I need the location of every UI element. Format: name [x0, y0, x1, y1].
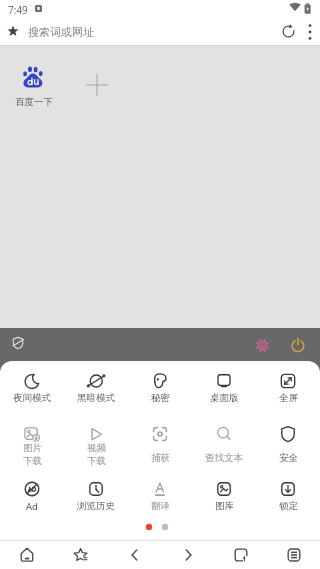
button[interactable] — [54, 541, 108, 569]
staticText: 锁定 — [279, 500, 298, 512]
button[interactable]: 图片 下载 — [0, 420, 64, 470]
button[interactable]: 安全 — [256, 420, 320, 470]
button[interactable] — [276, 19, 300, 43]
button[interactable]: 图库 — [192, 475, 256, 519]
button[interactable]: 锁定 — [256, 475, 320, 519]
staticText: 图片 下载 — [23, 442, 42, 467]
staticText: 秘密 — [151, 392, 170, 404]
button[interactable] — [0, 541, 54, 569]
button[interactable] — [301, 19, 319, 44]
button[interactable] — [66, 60, 128, 110]
button[interactable]: 捕获 — [128, 420, 192, 470]
staticText: 浏览历史 — [77, 500, 115, 512]
button[interactable] — [161, 541, 214, 569]
button[interactable]: 搜索词或网址 — [0, 18, 320, 45]
button[interactable] — [248, 331, 276, 359]
button[interactable]: 浏览历史 — [64, 475, 128, 519]
button[interactable]: 全屏 — [256, 367, 320, 411]
staticText: 视频 下载 — [87, 442, 106, 467]
staticText: 黑暗模式 — [77, 392, 115, 404]
button[interactable] — [284, 331, 312, 359]
staticText: 7:49 — [8, 3, 28, 17]
button[interactable] — [108, 541, 161, 569]
staticText: 桌面版 — [210, 392, 239, 404]
staticText: 百度一下 — [15, 96, 53, 108]
button[interactable] — [214, 541, 267, 569]
staticText: 图库 — [215, 500, 234, 512]
button[interactable]: 秘密 — [128, 367, 192, 411]
button[interactable]: 夜间模式 — [0, 367, 64, 411]
button[interactable]: 黑暗模式 — [64, 367, 128, 411]
button[interactable]: Ad — [0, 475, 64, 519]
staticText: 查找文本 — [205, 452, 243, 464]
staticText: 翻译 — [151, 500, 170, 512]
staticText: 捕获 — [151, 452, 170, 464]
staticText: 全屏 — [279, 392, 298, 404]
button[interactable]: 翻译 — [128, 475, 192, 519]
button[interactable] — [267, 541, 320, 569]
button[interactable]: 桌面版 — [192, 367, 256, 411]
button[interactable]: 百度一下 — [2, 60, 66, 126]
staticText: 安全 — [279, 452, 298, 464]
staticText: 夜间模式 — [13, 392, 51, 404]
button[interactable]: 查找文本 — [192, 420, 256, 470]
staticText: Ad — [26, 500, 38, 513]
button[interactable]: 视频 下载 — [64, 420, 128, 470]
button[interactable] — [4, 329, 32, 357]
staticText: 搜索词或网址 — [28, 25, 94, 39]
